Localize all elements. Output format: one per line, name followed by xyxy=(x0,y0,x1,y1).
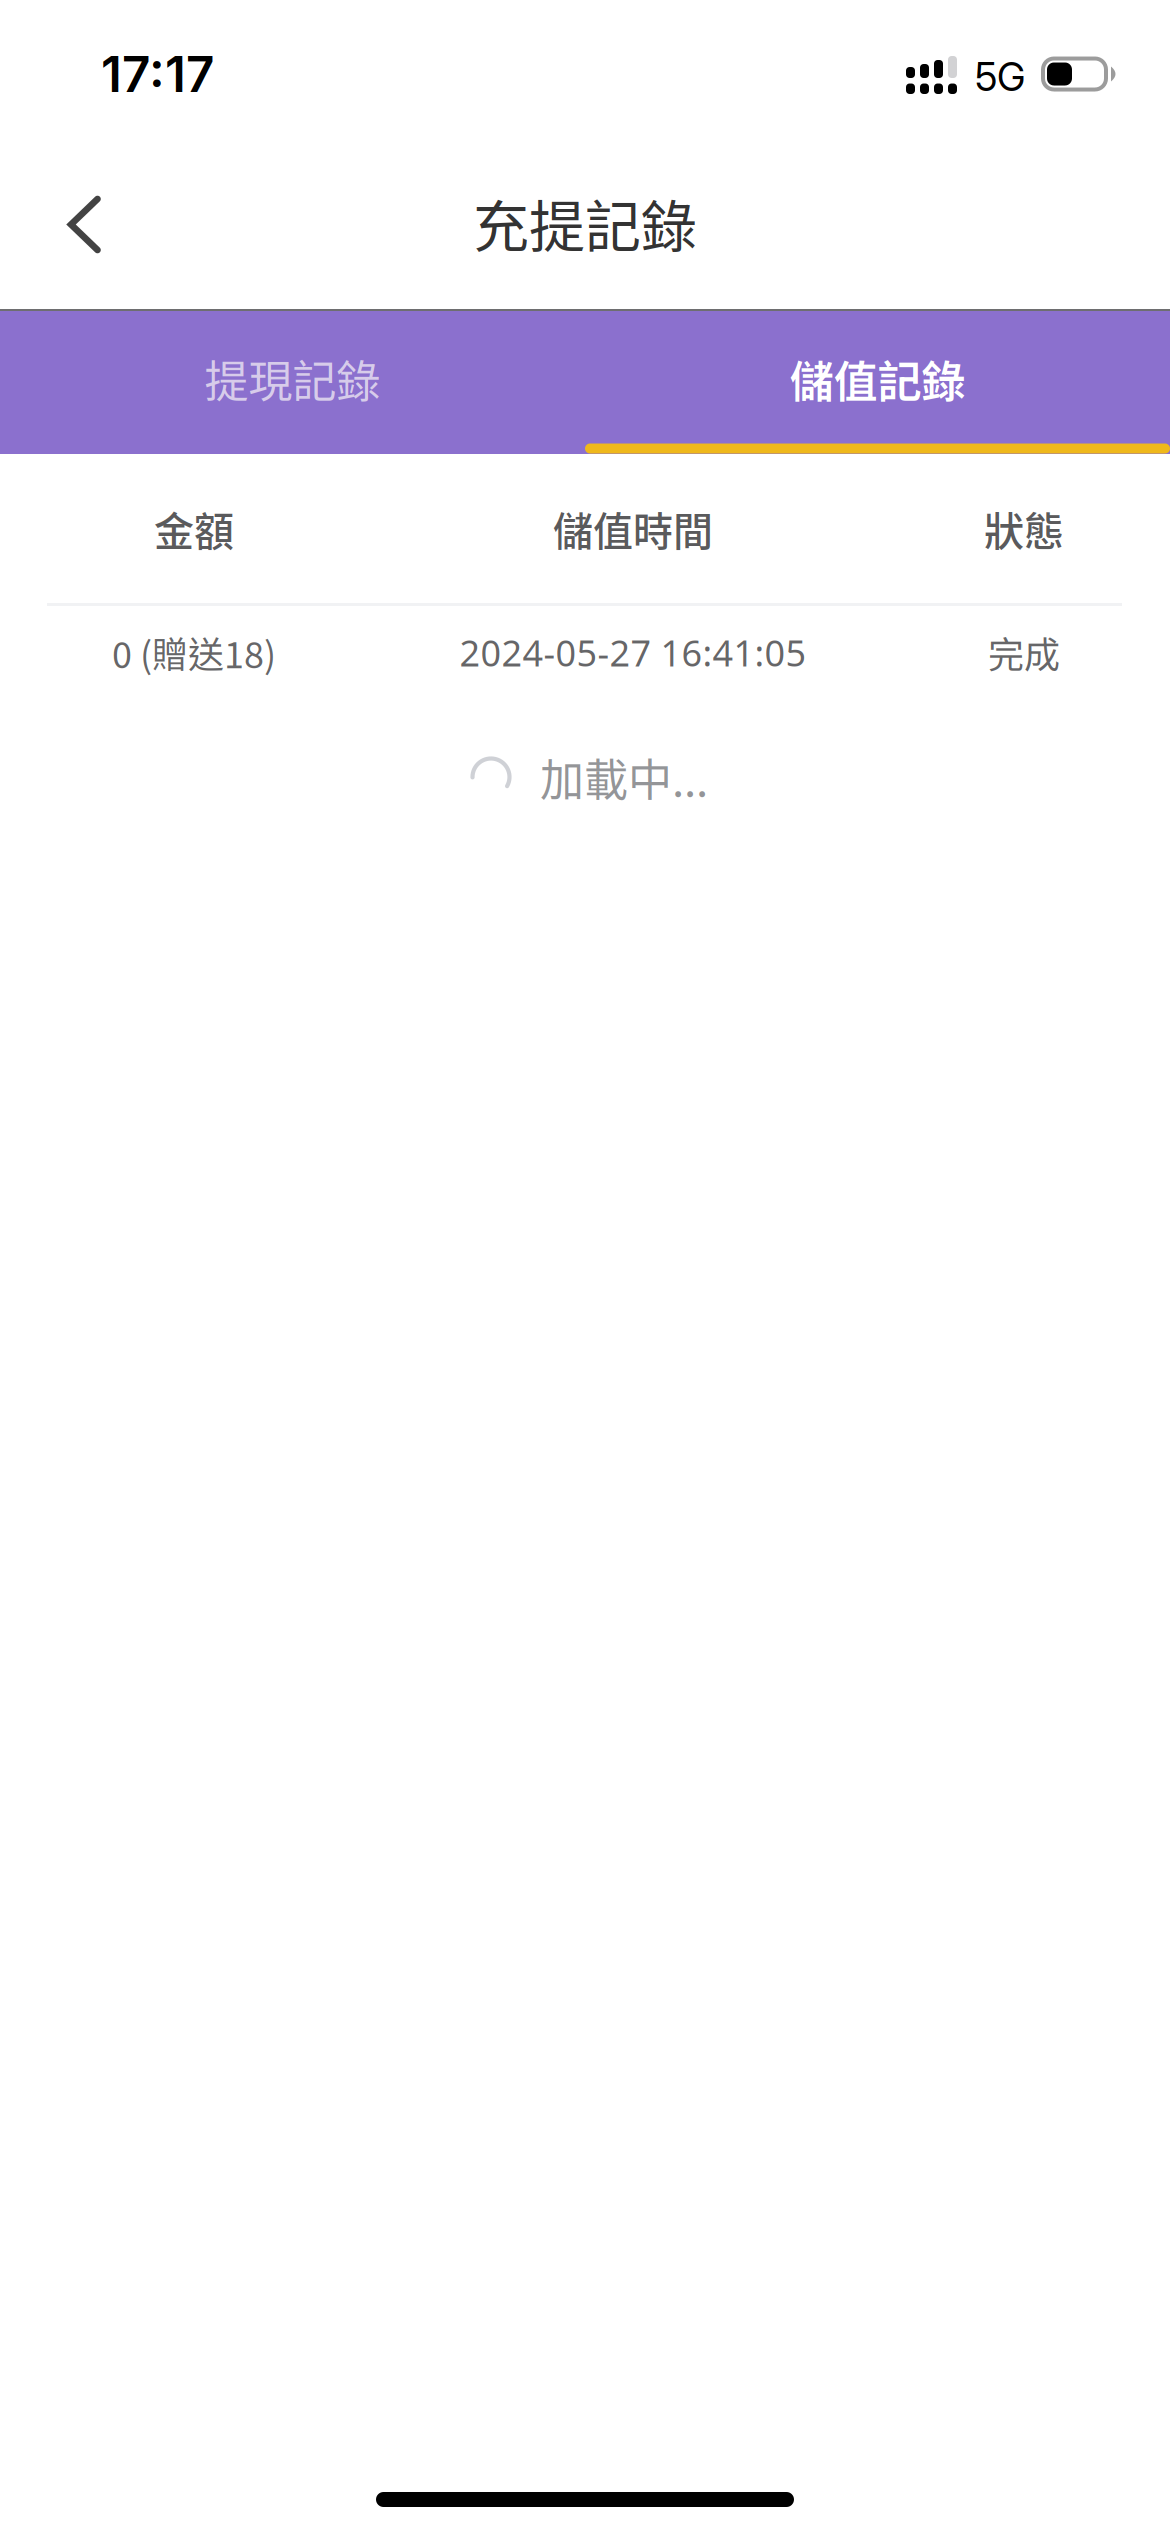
staticText: 2024-05-27 16:41:05 xyxy=(459,628,806,677)
staticText: 完成 xyxy=(988,626,1060,678)
staticText: 5G xyxy=(975,54,1025,100)
staticText: 金額 xyxy=(154,499,234,557)
staticText: 0 (贈送18) xyxy=(112,626,276,678)
staticText: 儲值時間 xyxy=(553,499,713,557)
button[interactable]: 提現記錄 xyxy=(0,311,585,453)
staticText: 儲值記錄 xyxy=(789,347,965,410)
staticText: 17:17 xyxy=(101,44,214,104)
button[interactable]: 儲值記錄 xyxy=(585,311,1170,453)
staticText: 狀態 xyxy=(984,499,1064,557)
button[interactable]: Back xyxy=(0,169,142,279)
staticText: 加載中... xyxy=(540,745,708,809)
staticText: 提現記錄 xyxy=(204,347,380,410)
staticText: 充提記錄 xyxy=(473,182,697,263)
